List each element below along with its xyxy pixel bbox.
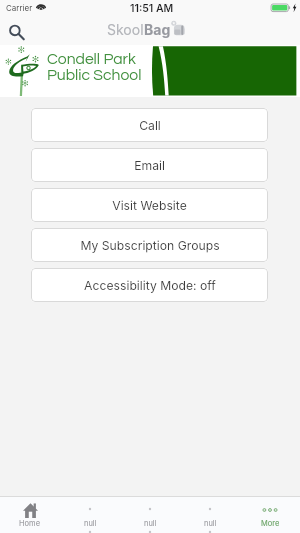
staticText: null	[84, 519, 97, 528]
button[interactable]: Email	[31, 148, 268, 182]
staticText: Home	[19, 519, 41, 528]
staticText: More	[261, 519, 280, 528]
button[interactable]: Accessibility Mode: off	[31, 268, 268, 302]
button[interactable]: Search	[3, 19, 28, 44]
staticText: Public School	[47, 67, 142, 83]
staticText: Email	[134, 158, 165, 173]
staticText: null	[144, 519, 157, 528]
staticText: Accessibility Mode: off	[84, 278, 216, 293]
staticText: My Subscription Groups	[80, 238, 220, 253]
staticText: null	[204, 519, 217, 528]
button[interactable]: Call	[31, 108, 268, 142]
button[interactable]: Visit Website	[31, 188, 268, 222]
button[interactable]: null	[120, 497, 180, 533]
staticText: Bag	[144, 21, 171, 38]
staticText: Visit Website	[112, 198, 187, 213]
button[interactable]: null	[180, 497, 240, 533]
staticText: Carrier	[6, 3, 33, 13]
button[interactable]: My Subscription Groups	[31, 228, 268, 262]
staticText: Condell Park	[47, 51, 136, 67]
staticText: Skool	[107, 21, 144, 38]
button[interactable]: Home	[0, 497, 60, 533]
button[interactable]: null	[60, 497, 120, 533]
staticText: 11:51 AM	[130, 2, 174, 15]
button[interactable]: More	[240, 497, 300, 533]
staticText: Call	[139, 118, 161, 133]
